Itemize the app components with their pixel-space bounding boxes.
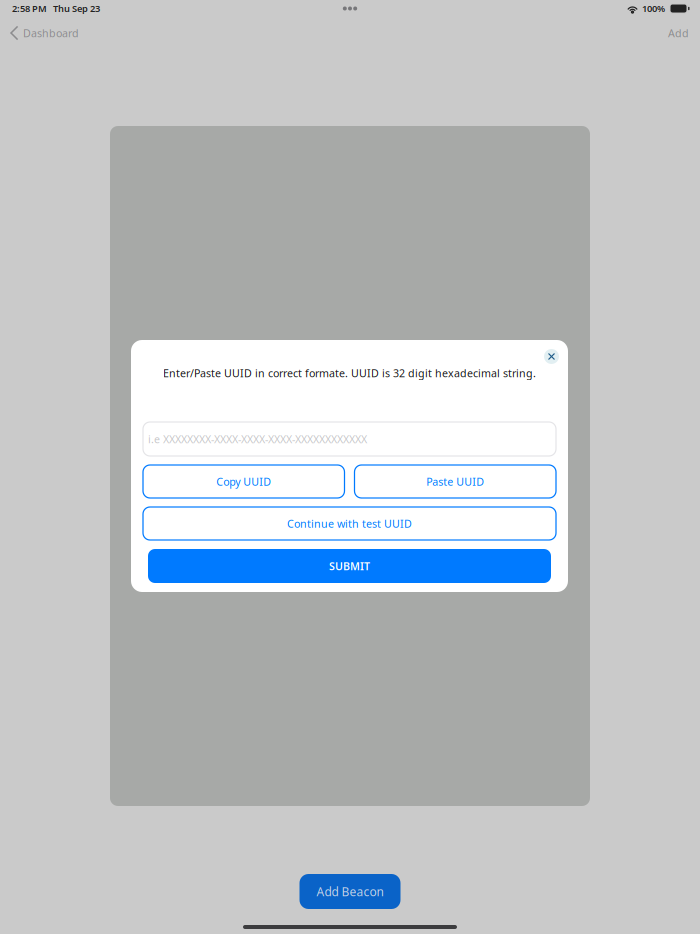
- staticText: Add: [668, 26, 689, 40]
- staticText: i.e XXXXXXXX-XXXX-XXXX-XXXX-XXXXXXXXXXXX: [148, 432, 367, 446]
- staticText: Paste UUID: [426, 474, 484, 489]
- staticText: Continue with test UUID: [287, 516, 412, 531]
- button[interactable]: Close: [540, 345, 563, 368]
- button[interactable]: Paste UUID: [354, 465, 556, 498]
- staticText: 100%: [642, 2, 665, 15]
- staticText: Dashboard: [23, 26, 79, 40]
- staticText: Enter/Paste UUID in correct formate. UUI…: [163, 366, 536, 380]
- staticText: SUBMIT: [329, 559, 370, 573]
- staticText: Thu Sep 23: [53, 2, 100, 15]
- button[interactable]: SUBMIT: [148, 549, 551, 583]
- button[interactable]: Dashboard: [5, 17, 84, 49]
- button[interactable]: Add Beacon: [299, 874, 400, 909]
- staticText: 2:58 PM: [12, 2, 47, 15]
- button[interactable]: i.e XXXXXXXX-XXXX-XXXX-XXXX-XXXXXXXXXXXX: [143, 422, 556, 456]
- button[interactable]: Add: [662, 17, 695, 49]
- button[interactable]: Continue with test UUID: [143, 507, 556, 540]
- button[interactable]: Copy UUID: [143, 465, 344, 498]
- staticText: Add Beacon: [316, 883, 383, 899]
- staticText: Copy UUID: [216, 474, 271, 489]
